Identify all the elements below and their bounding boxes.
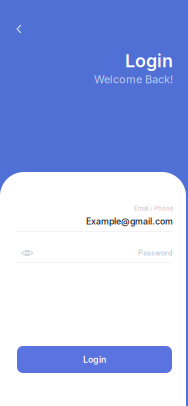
staticText: Login bbox=[125, 50, 173, 72]
staticText: Login bbox=[83, 354, 106, 365]
button[interactable]: Login bbox=[17, 346, 172, 373]
staticText: Email / Phone bbox=[134, 205, 173, 212]
staticText: Welcome Back! bbox=[94, 73, 173, 86]
button[interactable]: Back bbox=[8, 18, 30, 40]
staticText: Password bbox=[138, 249, 172, 257]
staticText: Example@gmail.com bbox=[86, 216, 173, 227]
